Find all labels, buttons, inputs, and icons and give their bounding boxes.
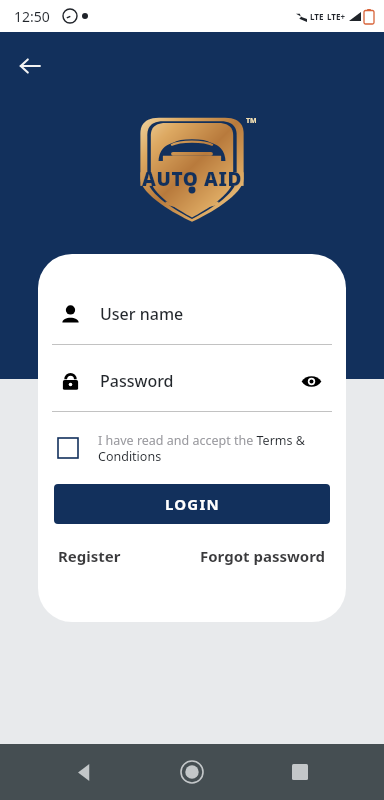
button[interactable]: LOGIN <box>54 484 330 524</box>
staticText: Forgot password <box>200 546 326 566</box>
button[interactable]: Password <box>38 357 346 405</box>
button[interactable]: Register <box>58 546 121 566</box>
button[interactable]: Home <box>168 748 216 796</box>
button[interactable]: Back <box>8 44 52 88</box>
button[interactable]: Back <box>60 748 108 796</box>
staticText: Password <box>100 370 174 392</box>
staticText: Register <box>58 546 121 566</box>
button[interactable]: I have read and accept the Terms & Condi… <box>38 432 346 464</box>
staticText: LTE <box>310 11 324 22</box>
button[interactable]: Recent apps <box>276 748 324 796</box>
staticText: LTE+ <box>327 11 345 22</box>
staticText: AUTO AID <box>142 166 243 192</box>
staticText: 12:50 <box>14 7 50 26</box>
button[interactable]: User name <box>38 290 346 338</box>
staticText: TM <box>246 116 257 126</box>
staticText: LOGIN <box>165 494 220 514</box>
staticText: User name <box>100 303 184 325</box>
button[interactable]: Forgot password <box>200 546 326 566</box>
button[interactable]: Show password <box>296 366 326 396</box>
staticText: I have read and accept the Terms & Condi… <box>98 432 326 464</box>
